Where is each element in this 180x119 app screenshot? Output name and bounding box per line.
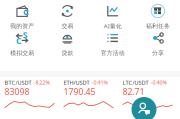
staticText: LTC/USDT [122, 79, 148, 86]
staticText: BTC/USDT [4, 79, 31, 86]
staticText: 模拟交易 [10, 49, 34, 57]
button[interactable]: 贷款 [45, 31, 90, 58]
button[interactable]: 分享 [135, 31, 180, 58]
button[interactable]: 福利任务 [135, 4, 180, 31]
button[interactable]: AI量化 [90, 4, 135, 31]
staticText: 分享 [152, 49, 164, 57]
button[interactable]: 官方活动 [90, 31, 135, 58]
staticText: 我的资产 [10, 22, 34, 30]
staticText: AI量化 [104, 22, 122, 30]
staticText: -0.41% [91, 79, 107, 86]
staticText: 交易 [61, 22, 73, 30]
staticText: -0.40% [150, 79, 166, 86]
staticText: C [16, 35, 22, 46]
staticText: 82.71 [122, 85, 144, 97]
staticText: ETH/USDT [63, 79, 89, 86]
button[interactable]: 在线客服 [131, 97, 156, 119]
button[interactable]: 交易 [45, 4, 90, 31]
button[interactable]: ETH/USDT [63, 79, 121, 110]
staticText: S [23, 29, 28, 41]
staticText: 官方活动 [101, 49, 125, 57]
button[interactable]: S [0, 31, 45, 58]
staticText: 1790.45 [63, 85, 95, 97]
staticText: -8.22% [33, 79, 49, 86]
staticText: 83098 [4, 85, 29, 97]
button[interactable]: 我的资产 [0, 4, 45, 31]
staticText: 贷款 [61, 49, 73, 57]
button[interactable]: BTC/USDT [4, 79, 62, 110]
staticText: 福利任务 [146, 22, 170, 30]
button[interactable]: LTC/USDT [122, 79, 180, 110]
